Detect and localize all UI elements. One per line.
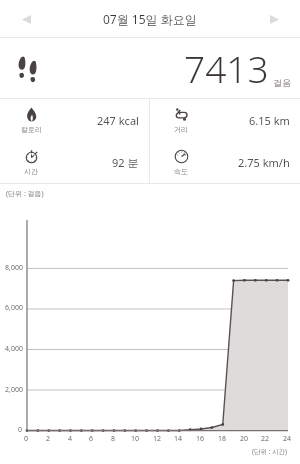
- staticText: 8: [111, 434, 116, 444]
- staticText: 거리: [174, 125, 188, 134]
- staticText: (단위 : 걸음): [6, 189, 44, 199]
- staticText: 8,000: [5, 263, 23, 273]
- button[interactable]: 시간: [0, 141, 149, 183]
- button[interactable]: 속도: [150, 141, 300, 183]
- staticText: 0: [24, 434, 29, 444]
- staticText: 14: [174, 434, 183, 444]
- staticText: 24: [283, 434, 292, 444]
- staticText: 247 kcal: [97, 113, 139, 128]
- staticText: 걸음: [273, 77, 291, 88]
- staticText: 12: [153, 434, 162, 444]
- button[interactable]: Previous day: [10, 3, 42, 35]
- staticText: 20: [240, 434, 249, 444]
- staticText: 0: [18, 425, 23, 435]
- button[interactable]: 칼로리: [0, 99, 149, 141]
- staticText: 4,000: [5, 344, 23, 354]
- staticText: 16: [196, 434, 205, 444]
- button[interactable]: Next day: [258, 3, 290, 35]
- staticText: 10: [131, 434, 140, 444]
- staticText: 6,000: [5, 303, 23, 313]
- staticText: 22: [261, 434, 270, 444]
- button[interactable]: 7413: [0, 38, 300, 98]
- staticText: 07월 15일 화요일: [103, 11, 197, 27]
- staticText: 2.75 km/h: [238, 155, 290, 170]
- staticText: 4: [68, 434, 73, 444]
- staticText: 속도: [174, 167, 188, 176]
- staticText: 칼로리: [21, 125, 42, 134]
- staticText: 2,000: [5, 385, 23, 395]
- staticText: 2: [46, 434, 51, 444]
- staticText: 6.15 km: [249, 113, 290, 128]
- staticText: 시간: [24, 167, 38, 176]
- staticText: (단위 : 시간): [252, 447, 288, 456]
- staticText: 18: [218, 434, 227, 444]
- staticText: 6: [89, 434, 94, 444]
- staticText: 7413: [184, 43, 269, 93]
- staticText: 92 분: [112, 155, 139, 170]
- button[interactable]: 거리: [150, 99, 300, 141]
